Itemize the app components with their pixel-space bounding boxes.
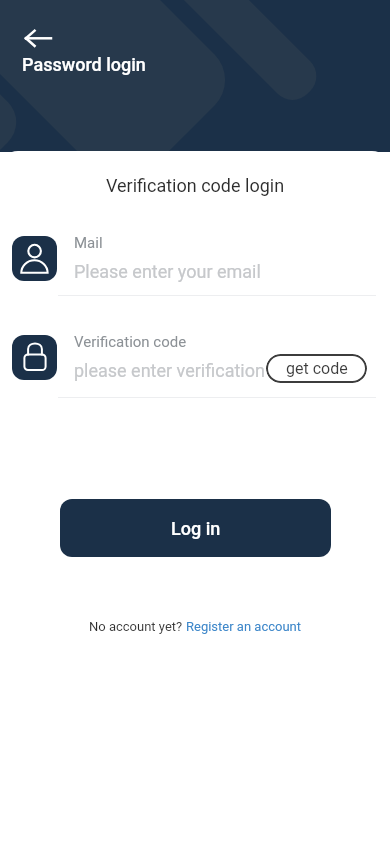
button[interactable]: Log in (60, 499, 331, 557)
staticText: Verification code login (0, 175, 390, 196)
button[interactable]: get code (266, 354, 367, 383)
button[interactable]: Register an account (186, 619, 302, 634)
staticText: Log in (171, 518, 221, 539)
staticText: get code (286, 359, 348, 378)
staticText: Please enter your email (74, 261, 261, 282)
staticText: Verification code (74, 333, 187, 351)
staticText: Password login (22, 54, 146, 75)
staticText: please enter verification code (74, 360, 266, 381)
staticText: Mail (74, 234, 103, 252)
button[interactable]: Back (10, 19, 46, 55)
staticText: No account yet? (89, 619, 186, 634)
